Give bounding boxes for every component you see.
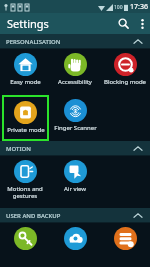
staticText: Air view — [64, 185, 86, 193]
button[interactable]: Private mode — [4, 97, 47, 139]
staticText: 100 — [114, 4, 123, 11]
button[interactable]: Finger Scanner — [50, 95, 100, 141]
button[interactable]: Settings item — [100, 223, 150, 267]
button[interactable]: MOTION — [0, 141, 150, 156]
staticText: Accessibility — [58, 78, 92, 86]
button[interactable]: Air view — [50, 156, 100, 208]
button[interactable]: USER AND BACKUP — [0, 208, 150, 223]
button[interactable]: Search — [112, 13, 134, 34]
button[interactable]: PERSONALISATION — [0, 34, 150, 49]
staticText: PERSONALISATION — [6, 38, 61, 46]
staticText: Settings — [7, 16, 49, 31]
button[interactable]: Motions and gestures — [0, 156, 50, 208]
staticText: Blocking mode — [104, 78, 146, 86]
staticText: Finger Scanner — [54, 124, 97, 132]
staticText: MOTION — [6, 145, 31, 153]
button[interactable]: More options — [134, 13, 150, 34]
staticText: 17:36 — [130, 2, 148, 12]
button[interactable]: Settings item — [0, 223, 50, 267]
button[interactable]: Blocking mode — [100, 49, 150, 95]
staticText: Private mode — [7, 126, 45, 134]
button[interactable]: Easy mode — [0, 49, 50, 95]
staticText: Easy mode — [10, 78, 41, 86]
button[interactable]: Accessibility — [50, 49, 100, 95]
staticText: USER AND BACKUP — [6, 212, 61, 220]
button[interactable]: Settings item — [50, 223, 100, 267]
staticText: Motions and gestures — [7, 185, 43, 200]
